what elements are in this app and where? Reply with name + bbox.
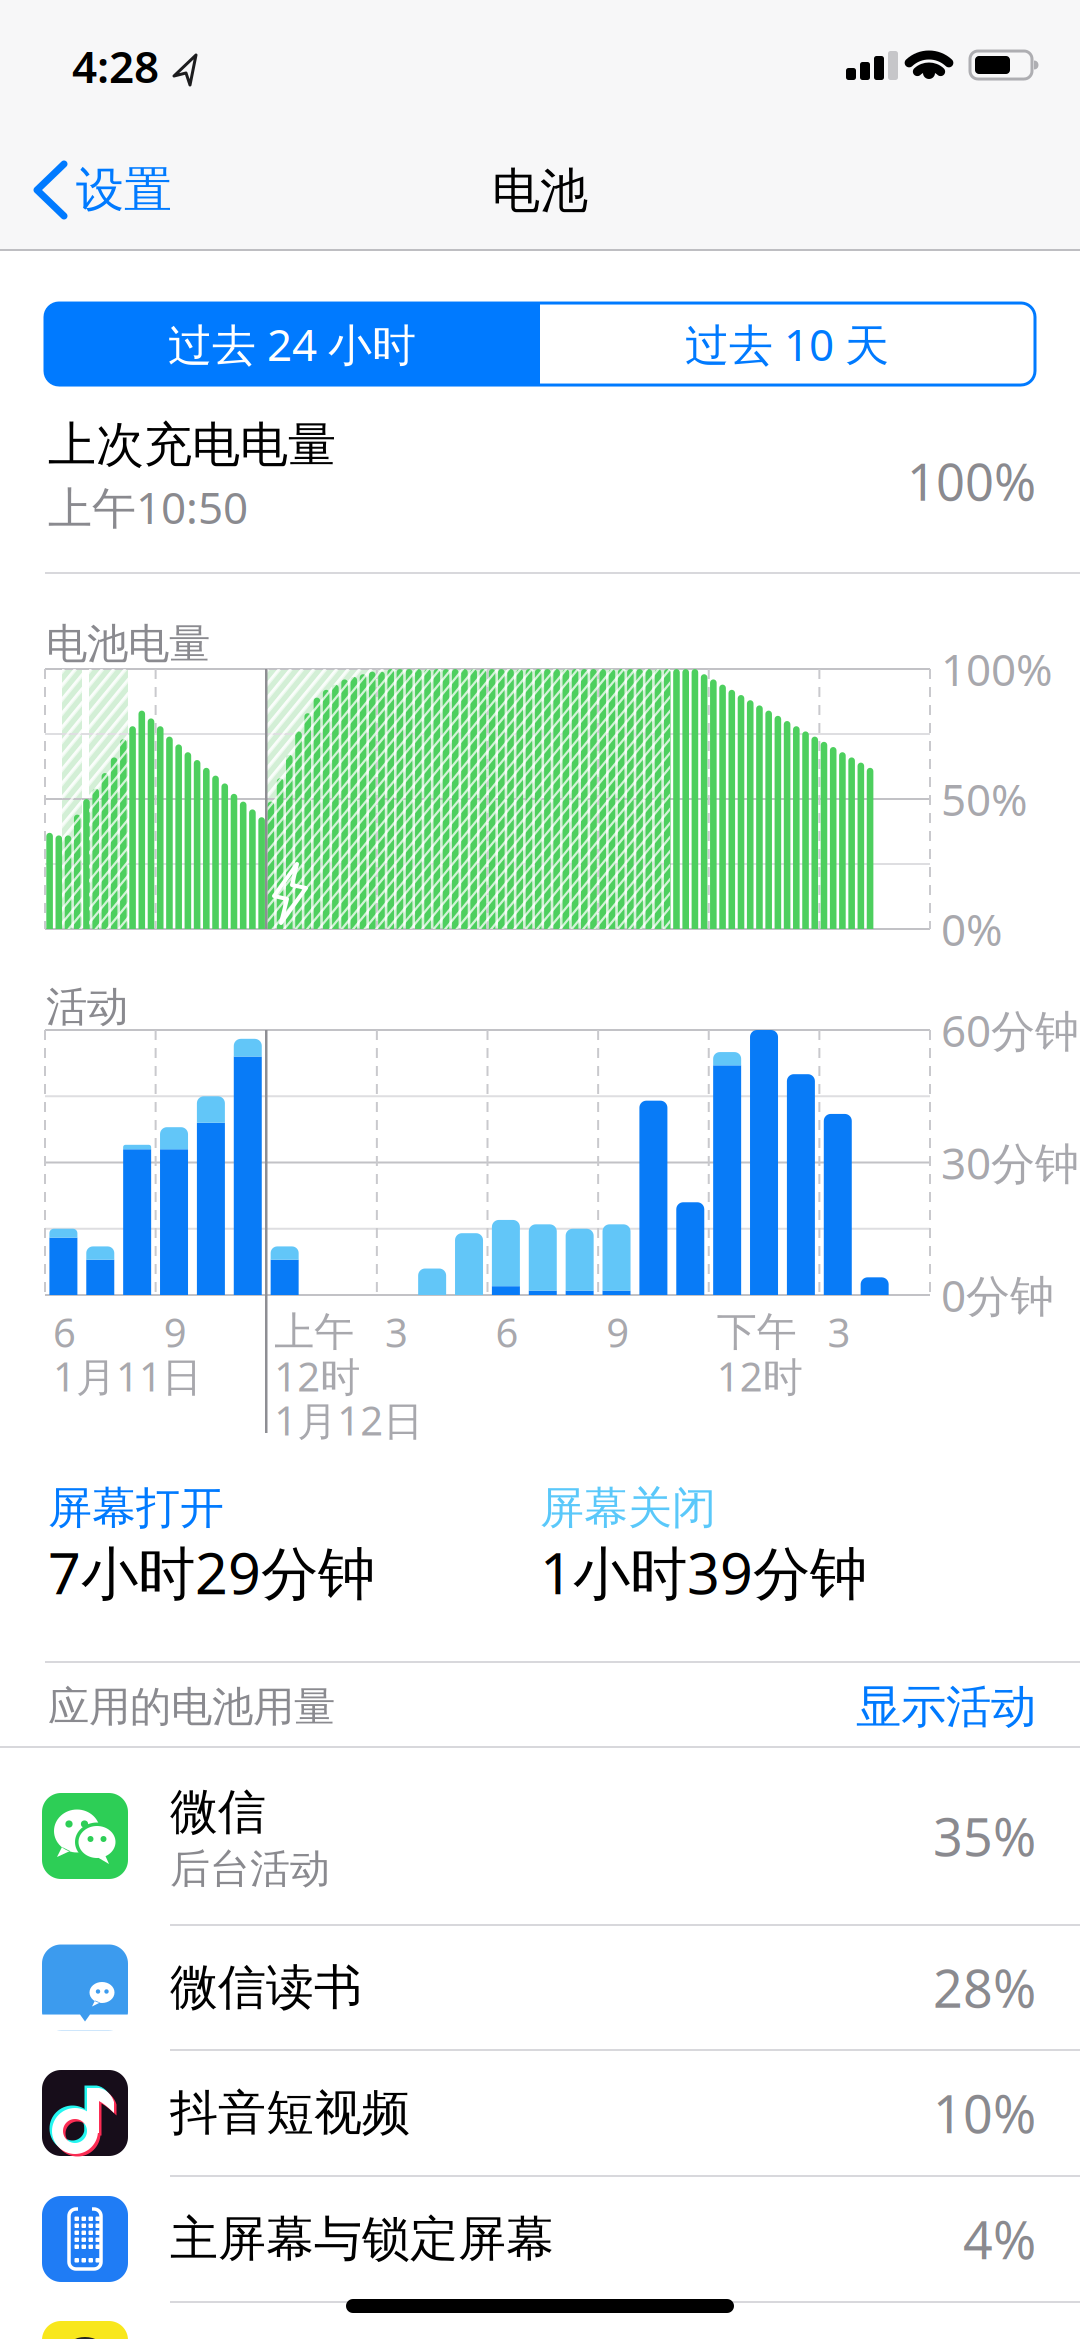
staticText: 7小时29分钟 <box>48 1534 375 1610</box>
staticText: 30分钟 <box>941 1133 1079 1192</box>
staticText: 6 <box>495 1305 518 1358</box>
button[interactable]: 微信读书 <box>0 1925 1080 2050</box>
staticText: 4:28 <box>72 37 159 95</box>
staticText: 0分钟 <box>941 1266 1054 1324</box>
staticText: 10% <box>933 2078 1036 2148</box>
staticText: 下午 <box>717 1307 797 1356</box>
staticText: 60分钟 <box>941 1001 1079 1059</box>
button[interactable]: 显示活动 <box>536 1672 1036 1742</box>
button[interactable]: 过去 10 天 <box>540 303 1035 385</box>
staticText: 主屏幕与锁定屏幕 <box>170 2209 554 2268</box>
staticText: 过去 24 小时 <box>168 315 416 373</box>
staticText: 4% <box>963 2204 1036 2274</box>
staticText: 后台活动 <box>170 1844 330 1893</box>
staticText: 上次充电电量 <box>48 415 336 474</box>
staticText: 屏幕关闭 <box>540 1481 716 1535</box>
staticText: 活动 <box>46 982 128 1032</box>
staticText: 35% <box>933 1801 1036 1871</box>
staticText: 100% <box>907 447 1036 515</box>
button[interactable]: 过去 24 小时 <box>45 303 540 385</box>
staticText: 0% <box>941 900 1003 958</box>
staticText: 9 <box>164 1305 187 1358</box>
staticText: 应用的电池用量 <box>48 1682 335 1732</box>
staticText: 12时 <box>717 1349 803 1402</box>
staticText: 9 <box>606 1305 629 1358</box>
button[interactable]: 主屏幕与锁定屏幕 <box>0 2176 1080 2302</box>
staticText: 设置 <box>76 160 172 219</box>
button[interactable]: 微信 <box>0 1747 1080 1925</box>
staticText: 抖音短视频 <box>170 2083 410 2142</box>
staticText: 6 <box>53 1305 76 1358</box>
staticText: 28% <box>933 1953 1036 2022</box>
staticText: 3 <box>385 1305 408 1358</box>
staticText: 1月11日 <box>53 1349 202 1402</box>
staticText: 屏幕打开 <box>48 1481 224 1535</box>
staticText: 电池电量 <box>46 619 210 669</box>
staticText: 电池 <box>492 161 588 220</box>
staticText: 过去 10 天 <box>685 315 889 373</box>
staticText: 50% <box>941 770 1028 828</box>
staticText: 100% <box>941 640 1053 698</box>
staticText: 1小时39分钟 <box>540 1534 867 1610</box>
staticText: 显示活动 <box>856 1679 1036 1735</box>
staticText: 12时 <box>274 1349 360 1402</box>
staticText: 微信读书 <box>170 1958 362 2017</box>
staticText: 3 <box>827 1305 850 1358</box>
button[interactable]: 设置 <box>30 158 230 238</box>
button[interactable]: 抖音短视频 <box>0 2050 1080 2176</box>
staticText: 微信 <box>170 1782 266 1841</box>
staticText: 上午10:50 <box>48 478 248 536</box>
staticText: 1月12日 <box>274 1393 423 1446</box>
staticText: 上午 <box>274 1307 354 1356</box>
